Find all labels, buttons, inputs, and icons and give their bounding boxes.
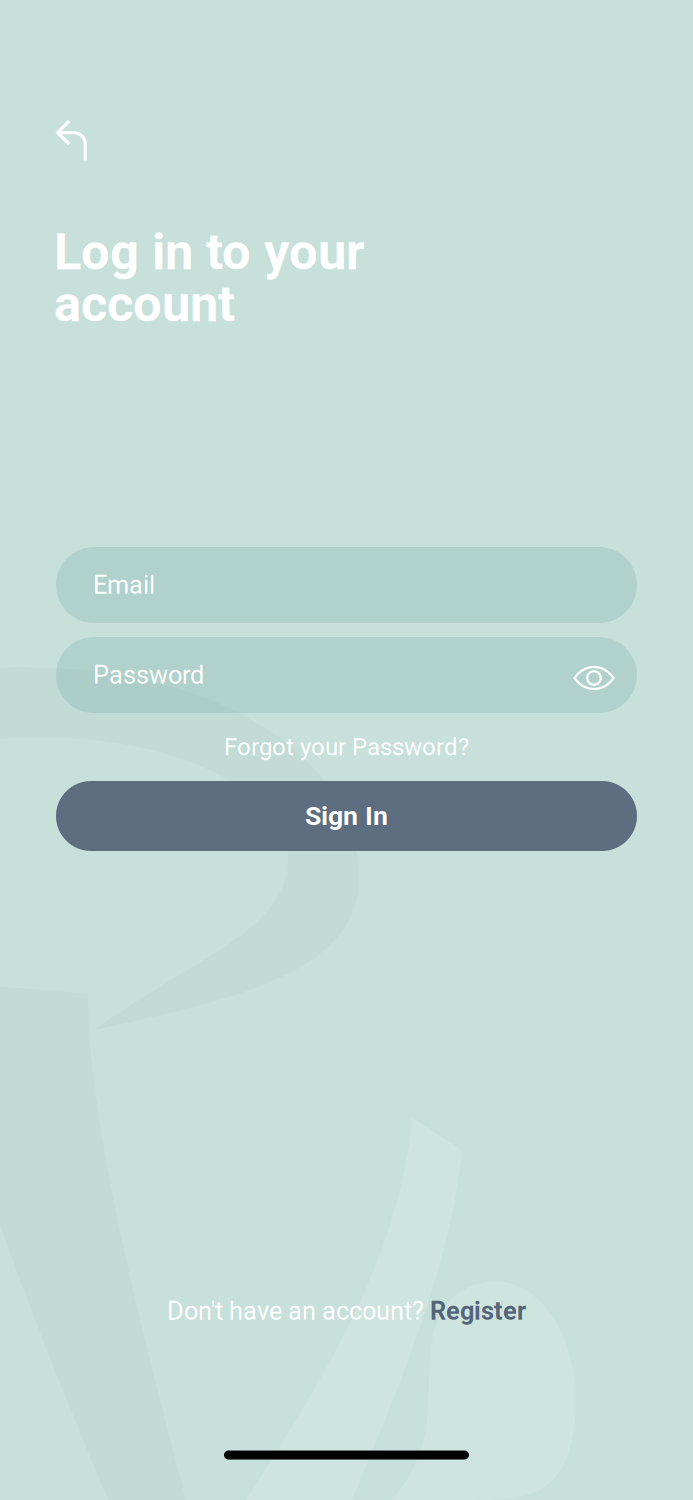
- button[interactable]: Back: [36, 106, 106, 176]
- button[interactable]: Sign In: [56, 781, 637, 851]
- staticText: Sign In: [305, 800, 388, 832]
- staticText: Log in to your: [54, 222, 365, 282]
- button[interactable]: Register: [430, 1296, 526, 1326]
- staticText: Password: [93, 660, 204, 690]
- staticText: Register: [430, 1296, 526, 1326]
- staticText: Forgot your Password?: [224, 733, 469, 761]
- button[interactable]: Show password: [565, 649, 623, 707]
- staticText: Don't have an account?: [167, 1296, 430, 1326]
- staticText: Email: [93, 570, 155, 600]
- button[interactable]: Forgot your Password?: [56, 722, 637, 772]
- staticText: account: [54, 274, 235, 334]
